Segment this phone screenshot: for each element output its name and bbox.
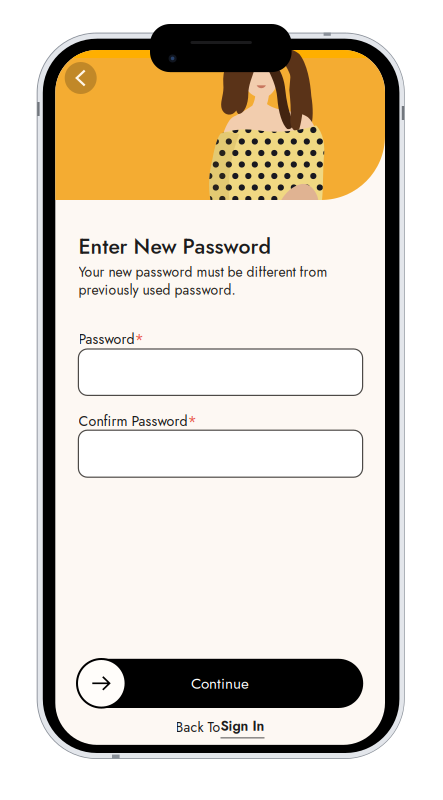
staticText: Sign In (220, 716, 264, 736)
staticText: * (188, 411, 197, 434)
staticText: Confirm Password (79, 411, 188, 431)
staticText: Your new password must be different from (79, 262, 328, 278)
staticText: Continue (191, 672, 249, 694)
staticText: Enter New Password (79, 231, 271, 253)
staticText: Password (79, 329, 135, 349)
staticText: previously used password. (79, 280, 236, 296)
staticText: * (135, 329, 144, 352)
button[interactable]: Back (65, 62, 97, 94)
button[interactable]: Back To (160, 716, 280, 738)
button[interactable]: Continue (77, 659, 363, 708)
staticText: Back To (175, 717, 220, 737)
